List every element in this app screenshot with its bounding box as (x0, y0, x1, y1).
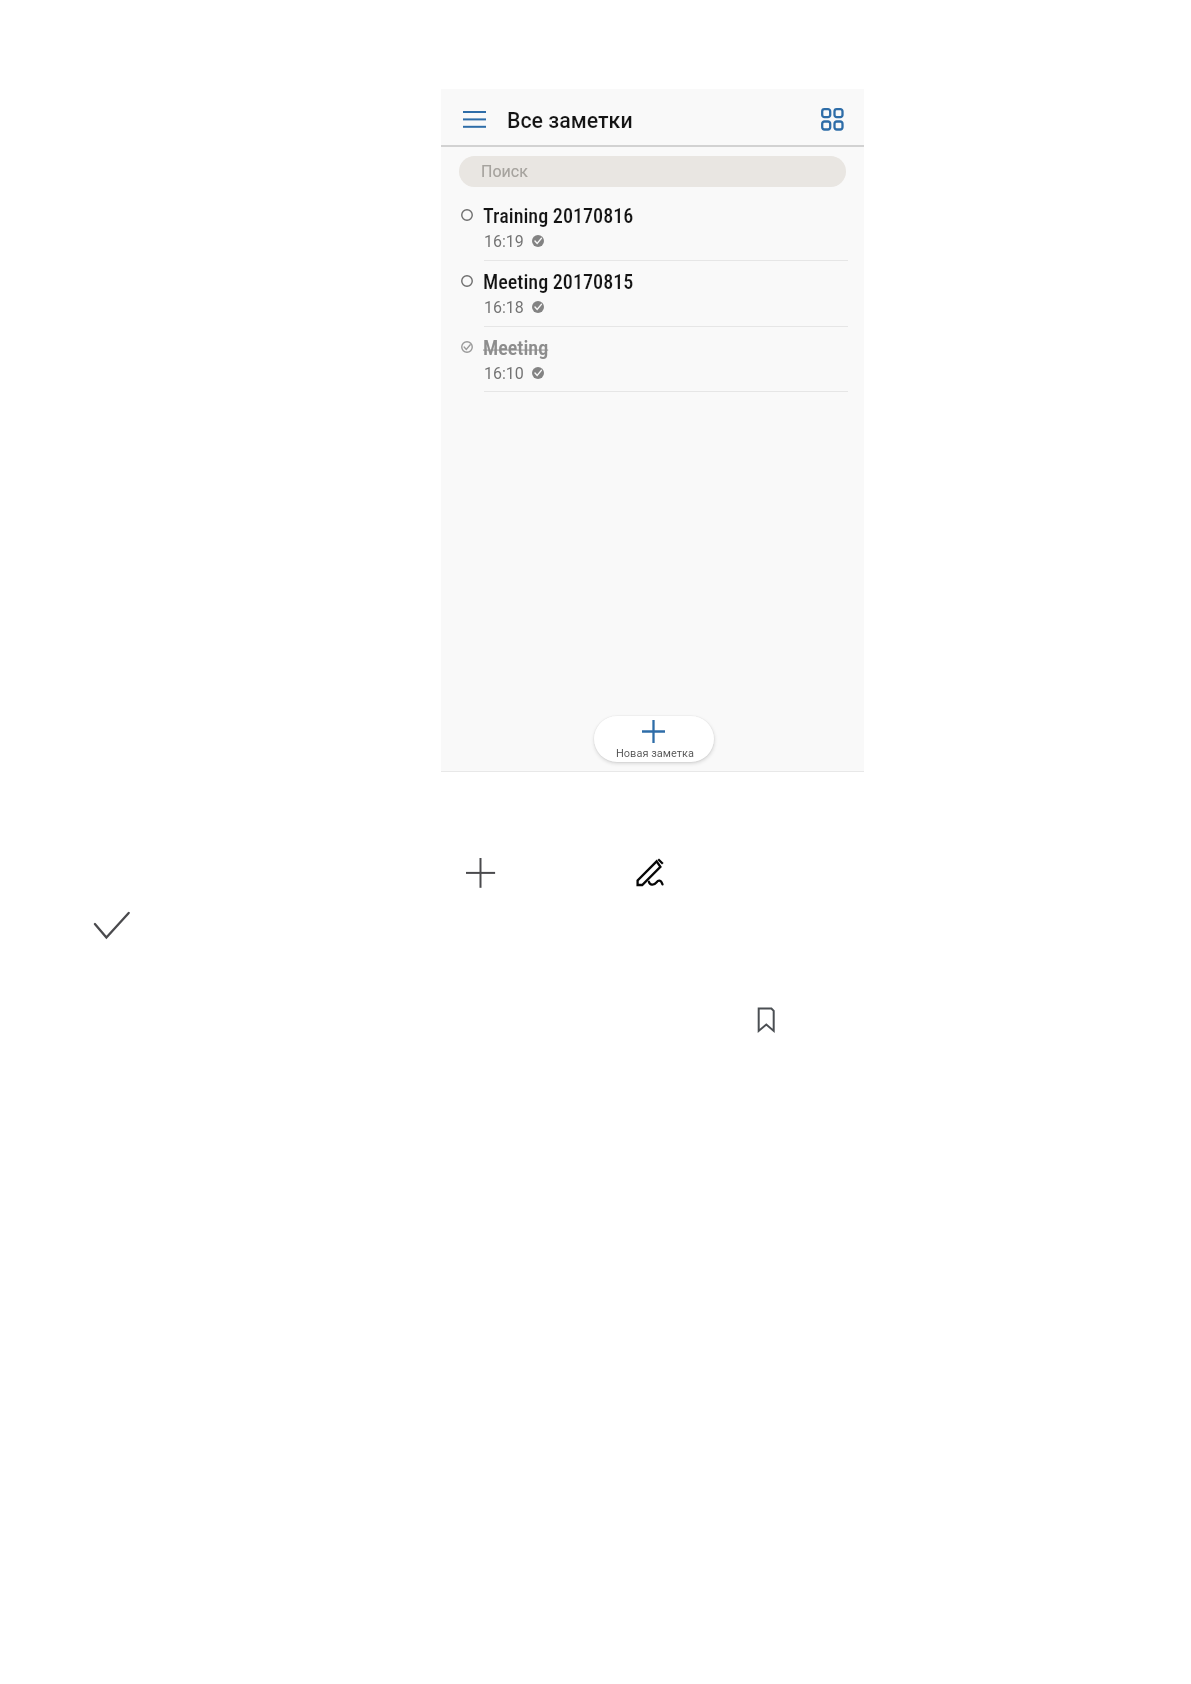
button[interactable]: Meeting (441, 330, 864, 394)
button[interactable]: Поиск (459, 156, 846, 187)
staticText: Все заметки (507, 108, 633, 133)
staticText: Новая заметка (616, 747, 694, 760)
button[interactable]: Edit (630, 852, 674, 896)
button[interactable]: Новая заметка (594, 716, 714, 762)
button[interactable]: Done (85, 902, 135, 952)
staticText: Поиск (481, 162, 528, 181)
button[interactable]: Bookmark (752, 1001, 784, 1033)
staticText: Meeting (483, 336, 549, 360)
staticText: 16:19 (484, 232, 524, 251)
button[interactable]: Grid view (821, 108, 844, 131)
staticText: Training 20170816 (483, 204, 634, 228)
staticText: 16:18 (484, 298, 524, 317)
staticText: 16:10 (484, 364, 524, 383)
button[interactable]: Menu (453, 100, 485, 132)
button[interactable]: Training 20170816 (441, 198, 864, 263)
button[interactable]: Meeting 20170815 (441, 264, 864, 329)
staticText: Meeting 20170815 (483, 270, 634, 294)
button[interactable]: Add (458, 850, 503, 895)
